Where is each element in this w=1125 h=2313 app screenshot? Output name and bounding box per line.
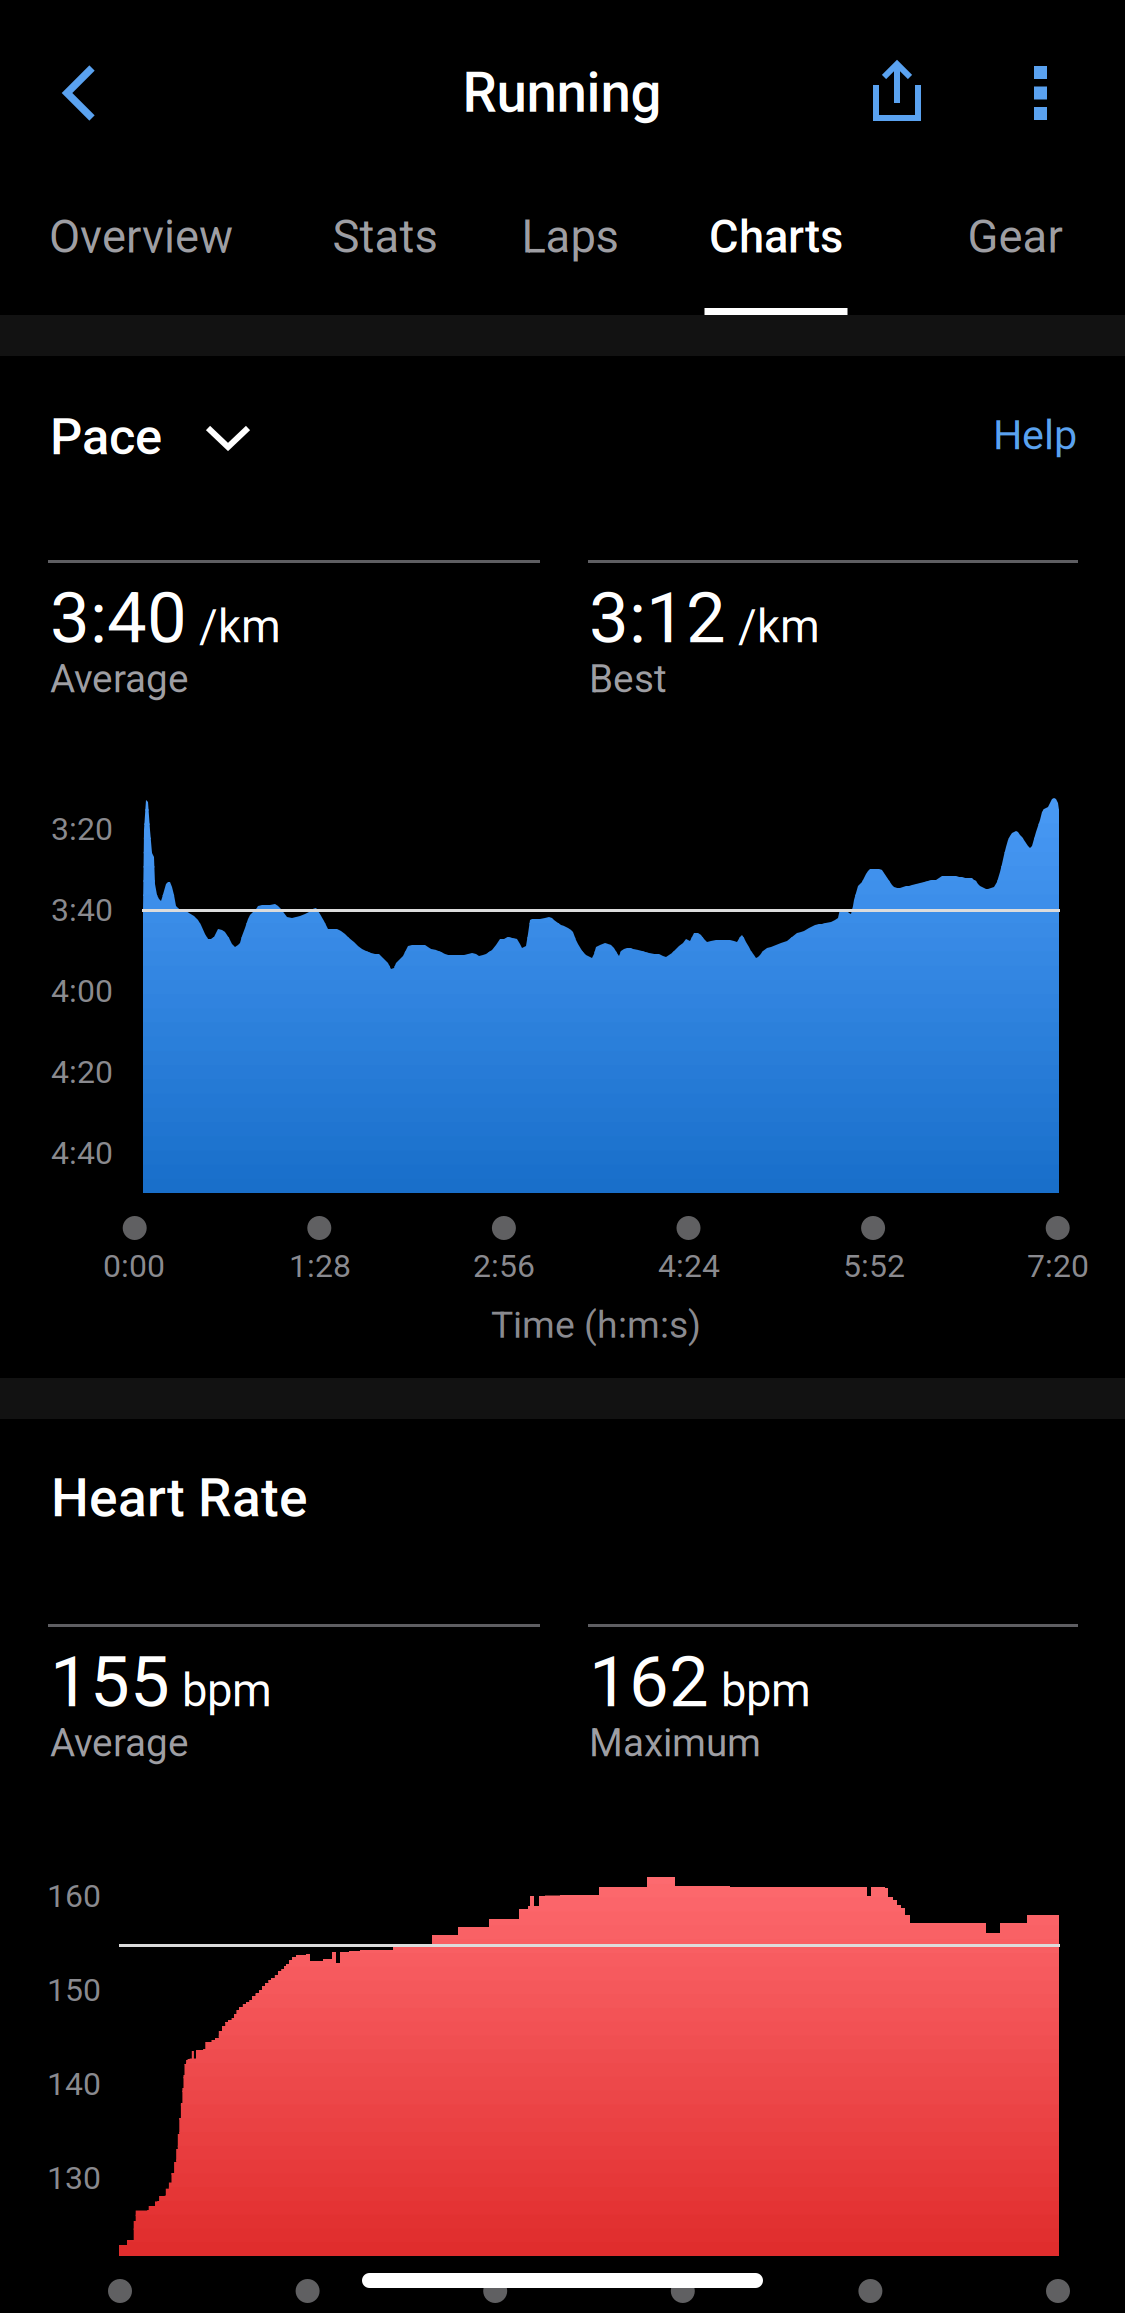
- staticText: Help: [993, 411, 1077, 459]
- staticText: 3:12: [589, 577, 726, 659]
- staticText: 4:24: [658, 1247, 720, 1285]
- staticText: Average: [50, 1720, 189, 1766]
- staticText: Running: [462, 61, 661, 125]
- staticText: Average: [50, 656, 189, 702]
- staticText: 2:56: [473, 1247, 535, 1285]
- staticText: Heart Rate: [51, 1467, 308, 1529]
- staticText: Laps: [521, 210, 618, 263]
- button[interactable]: Gear: [927, 189, 1102, 319]
- staticText: Overview: [49, 210, 233, 263]
- staticText: 1:28: [289, 1247, 351, 1285]
- staticText: 130: [47, 2159, 101, 2197]
- staticText: 5:52: [843, 1247, 905, 1285]
- button[interactable]: Laps: [487, 189, 652, 319]
- button[interactable]: Stats: [297, 189, 472, 319]
- staticText: bpm: [182, 1664, 272, 1717]
- staticText: 4:00: [51, 972, 113, 1010]
- staticText: Gear: [967, 210, 1062, 263]
- staticText: 160: [47, 1877, 101, 1915]
- staticText: 0:00: [103, 1247, 165, 1285]
- staticText: 150: [47, 1971, 101, 2009]
- staticText: 155: [50, 1641, 170, 1723]
- button[interactable]: Help: [966, 390, 1125, 2313]
- button[interactable]: Charts: [683, 189, 868, 319]
- staticText: 3:20: [51, 810, 113, 848]
- staticText: Pace: [50, 407, 162, 467]
- staticText: 4:40: [51, 1134, 113, 1172]
- staticText: Best: [589, 656, 667, 702]
- button[interactable]: Overview: [26, 189, 256, 319]
- staticText: Stats: [332, 210, 437, 263]
- staticText: 140: [47, 2065, 101, 2103]
- staticText: 162: [589, 1641, 709, 1723]
- button[interactable]: More options: [981, 32, 1101, 152]
- button[interactable]: Back: [34, 46, 154, 166]
- staticText: Maximum: [589, 1720, 761, 1766]
- staticText: /km: [738, 600, 820, 653]
- button[interactable]: Share: [843, 33, 963, 153]
- staticText: bpm: [721, 1664, 811, 1717]
- staticText: 4:20: [51, 1053, 113, 1091]
- staticText: Time (h:m:s): [491, 1303, 701, 1347]
- staticText: Charts: [709, 210, 843, 263]
- staticText: 3:40: [51, 891, 113, 929]
- staticText: 3:40: [50, 577, 187, 659]
- staticText: /km: [199, 600, 281, 653]
- staticText: 7:20: [1027, 1247, 1089, 1285]
